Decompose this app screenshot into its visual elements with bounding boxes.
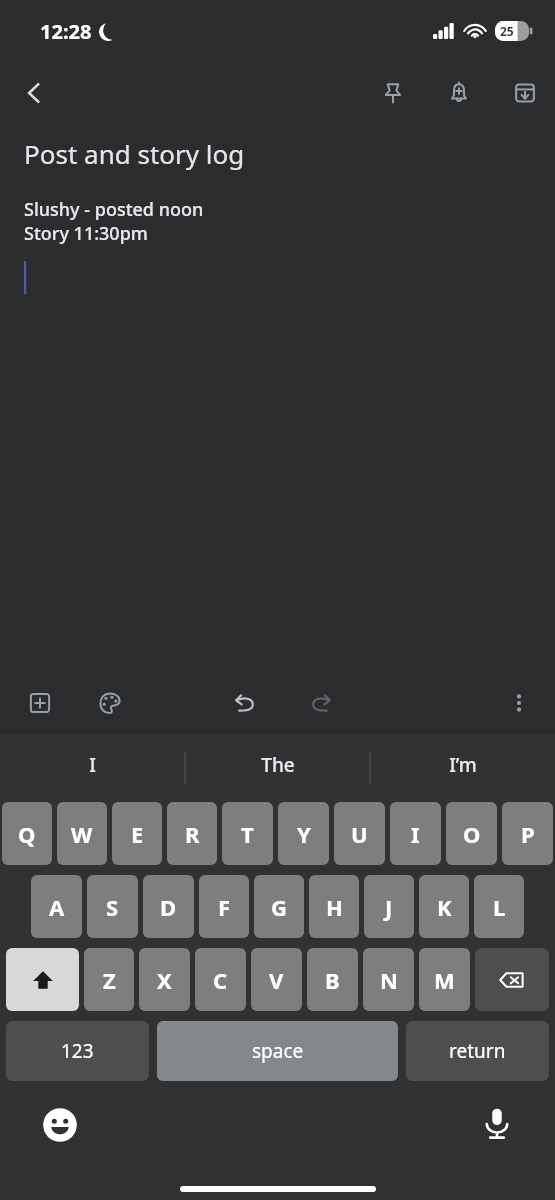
button[interactable]: J bbox=[364, 875, 414, 938]
staticText: 12:28 bbox=[40, 18, 92, 45]
button[interactable]: N bbox=[363, 948, 414, 1011]
button[interactable]: More options bbox=[497, 681, 541, 725]
button[interactable]: return bbox=[406, 1021, 549, 1081]
button[interactable]: Slushy - posted noon Story 11:30pm bbox=[24, 197, 204, 245]
button[interactable]: Redo bbox=[300, 681, 344, 725]
button[interactable]: D bbox=[143, 875, 194, 938]
staticText: X bbox=[157, 965, 172, 995]
button[interactable]: I bbox=[390, 802, 441, 865]
staticText: D bbox=[160, 892, 177, 922]
button[interactable]: B bbox=[307, 948, 358, 1011]
staticText: G bbox=[271, 892, 287, 922]
staticText: L bbox=[493, 892, 506, 922]
button[interactable]: V bbox=[251, 948, 302, 1011]
staticText: S bbox=[106, 892, 119, 922]
button[interactable]: L bbox=[474, 875, 524, 938]
staticText: N bbox=[380, 965, 398, 995]
staticText: Q bbox=[18, 819, 36, 849]
staticText: E bbox=[131, 819, 144, 849]
button[interactable]: Undo bbox=[222, 681, 266, 725]
staticText: M bbox=[434, 965, 455, 995]
button[interactable]: Z bbox=[84, 948, 134, 1011]
button[interactable]: Add item bbox=[18, 681, 62, 725]
button[interactable]: 123 bbox=[6, 1021, 149, 1081]
button[interactable]: Shift bbox=[6, 948, 79, 1011]
staticText: F bbox=[218, 892, 231, 922]
staticText: U bbox=[351, 819, 368, 849]
button[interactable]: Pin note bbox=[371, 71, 415, 115]
button[interactable]: Back bbox=[10, 69, 58, 117]
button[interactable]: Backspace bbox=[475, 948, 549, 1011]
button[interactable]: H bbox=[309, 875, 359, 938]
button[interactable]: A bbox=[31, 875, 82, 938]
staticText: The bbox=[261, 752, 295, 778]
staticText: A bbox=[49, 892, 65, 922]
staticText: J bbox=[385, 892, 393, 922]
staticText: P bbox=[521, 819, 535, 849]
button[interactable]: W bbox=[57, 802, 107, 865]
button[interactable]: P bbox=[502, 802, 553, 865]
staticText: I bbox=[89, 752, 96, 778]
button[interactable]: Archive bbox=[503, 71, 547, 115]
staticText: 123 bbox=[61, 1038, 94, 1064]
button[interactable]: F bbox=[199, 875, 249, 938]
staticText: I bbox=[411, 819, 420, 849]
staticText: O bbox=[463, 819, 481, 849]
staticText: B bbox=[325, 965, 340, 995]
button[interactable]: Emoji bbox=[36, 1101, 84, 1149]
staticText: C bbox=[213, 965, 228, 995]
button[interactable]: The bbox=[185, 734, 370, 796]
staticText: T bbox=[241, 819, 254, 849]
staticText: K bbox=[437, 892, 452, 922]
button[interactable]: I’m bbox=[370, 734, 555, 796]
button[interactable]: E bbox=[112, 802, 162, 865]
staticText: 25 bbox=[500, 23, 514, 39]
button[interactable]: Post and story log bbox=[24, 136, 245, 171]
button[interactable]: Y bbox=[278, 802, 329, 865]
staticText: I’m bbox=[449, 752, 477, 778]
button[interactable]: I bbox=[0, 734, 185, 796]
staticText: W bbox=[71, 819, 93, 849]
button[interactable]: O bbox=[446, 802, 497, 865]
button[interactable]: G bbox=[254, 875, 304, 938]
button[interactable]: R bbox=[167, 802, 217, 865]
button[interactable]: Change colour bbox=[88, 681, 132, 725]
staticText: Y bbox=[297, 819, 311, 849]
button[interactable]: Voice input bbox=[473, 1099, 521, 1147]
staticText: H bbox=[326, 892, 343, 922]
staticText: Z bbox=[103, 965, 116, 995]
button[interactable]: U bbox=[334, 802, 385, 865]
button[interactable]: Q bbox=[2, 802, 52, 865]
button[interactable]: Add reminder bbox=[437, 71, 481, 115]
staticText: R bbox=[185, 819, 200, 849]
staticText: V bbox=[269, 965, 284, 995]
staticText: space bbox=[252, 1038, 304, 1064]
button[interactable]: M bbox=[419, 948, 470, 1011]
button[interactable]: T bbox=[222, 802, 273, 865]
button[interactable]: space bbox=[157, 1021, 398, 1081]
button[interactable]: X bbox=[139, 948, 190, 1011]
staticText: return bbox=[449, 1038, 506, 1064]
button[interactable]: S bbox=[87, 875, 138, 938]
button[interactable]: K bbox=[419, 875, 469, 938]
button[interactable]: C bbox=[195, 948, 246, 1011]
